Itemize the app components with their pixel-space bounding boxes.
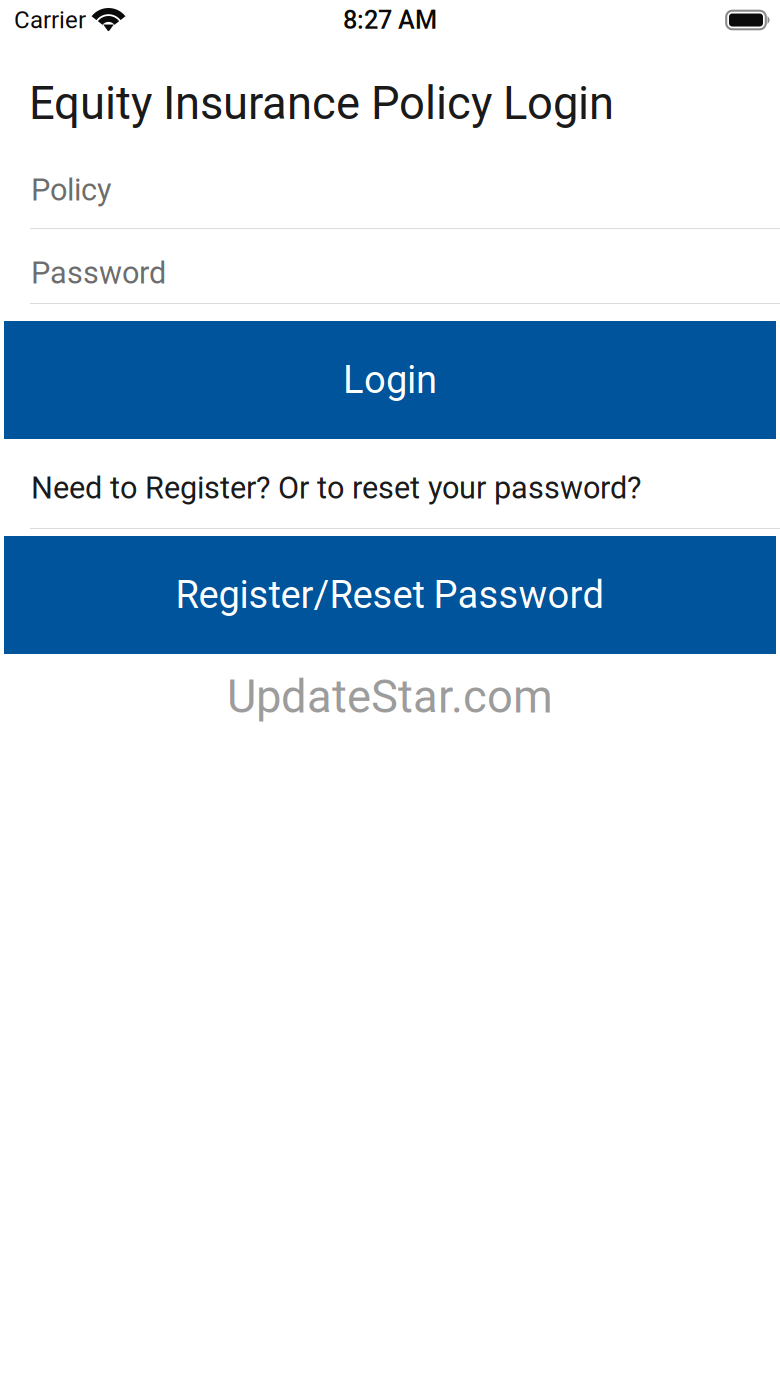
staticText: Carrier <box>14 6 86 34</box>
staticText: Password <box>31 255 166 291</box>
button[interactable]: Login <box>0 321 780 439</box>
staticText: UpdateStar.com <box>227 670 553 723</box>
staticText: Login <box>343 358 437 402</box>
button[interactable]: Policy <box>0 150 780 229</box>
button[interactable]: Register/Reset Password <box>0 536 780 654</box>
staticText: Equity Insurance Policy Login <box>29 77 614 130</box>
staticText: Need to Register? Or to reset your passw… <box>31 470 641 506</box>
staticText: Register/Reset Password <box>175 573 604 617</box>
button[interactable]: Password <box>0 229 780 304</box>
staticText: Policy <box>31 172 112 208</box>
staticText: 8:27 AM <box>343 5 437 35</box>
